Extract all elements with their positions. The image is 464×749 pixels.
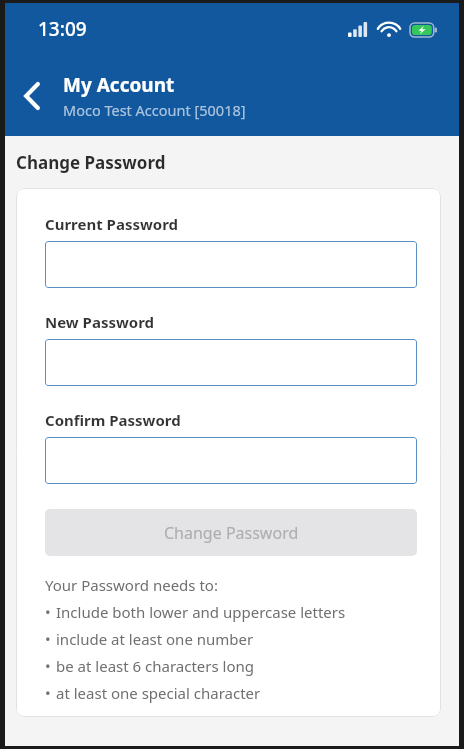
staticText: be at least 6 characters long [56, 656, 255, 676]
staticText: New Password [45, 312, 155, 332]
button[interactable]: Password input field [45, 339, 417, 386]
staticText: • [45, 656, 51, 676]
button[interactable]: Password input field [45, 241, 417, 288]
staticText: Confirm Password [45, 410, 181, 430]
staticText: Your Password needs to: [45, 575, 218, 595]
button[interactable]: Change Password [45, 509, 417, 556]
staticText: • [45, 683, 51, 703]
staticText: Moco Test Account [50018] [63, 100, 246, 120]
button[interactable]: Password input field [45, 437, 417, 484]
button[interactable]: Back [11, 75, 53, 117]
staticText: 13:09 [38, 16, 87, 42]
staticText: My Account [63, 72, 175, 98]
staticText: at least one special character [56, 683, 261, 703]
staticText: Current Password [45, 214, 179, 234]
staticText: Change Password [16, 151, 166, 174]
staticText: Change Password [164, 522, 299, 544]
staticText: • [45, 629, 51, 649]
staticText: include at least one number [56, 629, 254, 649]
staticText: • [45, 602, 51, 622]
staticText: Include both lower and uppercase letters [56, 602, 346, 622]
